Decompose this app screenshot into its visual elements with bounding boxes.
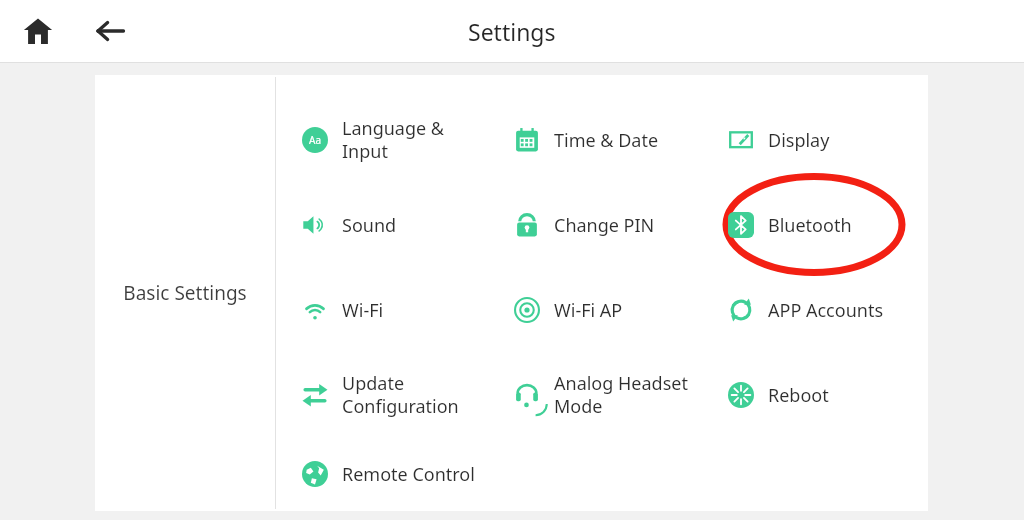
- button[interactable]: Wi-Fi: [300, 295, 384, 325]
- button[interactable]: Sound: [300, 210, 397, 240]
- staticText: Analog Headset Mode: [554, 371, 688, 418]
- button[interactable]: Time & Date: [512, 125, 659, 155]
- staticText: Reboot: [768, 383, 829, 408]
- staticText: Bluetooth: [768, 213, 852, 238]
- button[interactable]: Change PIN: [512, 210, 655, 240]
- staticText: Remote Control: [342, 462, 475, 487]
- button[interactable]: Home: [14, 7, 62, 55]
- staticText: APP Accounts: [768, 298, 884, 323]
- button[interactable]: Update Configuration: [300, 371, 459, 418]
- staticText: Basic Settings: [123, 280, 247, 306]
- staticText: Update Configuration: [342, 371, 459, 418]
- staticText: Change PIN: [554, 213, 655, 238]
- button[interactable]: Bluetooth: [726, 210, 852, 240]
- button[interactable]: APP Accounts: [726, 295, 884, 325]
- button[interactable]: Aa: [300, 116, 445, 163]
- button[interactable]: Wi-Fi AP: [512, 295, 623, 325]
- staticText: Display: [768, 128, 830, 153]
- staticText: Time & Date: [554, 128, 659, 153]
- staticText: Wi-Fi: [342, 298, 384, 323]
- button[interactable]: Reboot: [726, 380, 829, 410]
- button[interactable]: Back: [86, 7, 134, 55]
- staticText: Wi-Fi AP: [554, 298, 623, 323]
- button[interactable]: Analog Headset Mode: [512, 371, 688, 418]
- staticText: Aa: [309, 133, 321, 147]
- staticText: Sound: [342, 213, 397, 238]
- staticText: Settings: [468, 16, 556, 47]
- button[interactable]: Remote Control: [300, 459, 475, 489]
- button[interactable]: Display: [726, 125, 830, 155]
- staticText: Language & Input: [342, 116, 445, 163]
